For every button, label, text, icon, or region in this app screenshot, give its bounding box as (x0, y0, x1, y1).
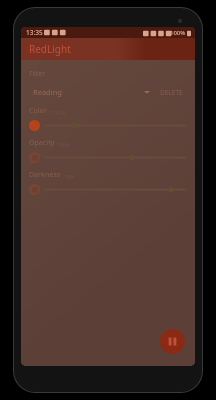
button[interactable]: Color swatch (29, 120, 40, 131)
staticText: 13:35 (26, 28, 43, 37)
staticText: DELETE (160, 88, 183, 97)
staticText: Color (29, 106, 47, 116)
button[interactable]: Color slider (45, 119, 185, 132)
button[interactable]: Reading (29, 85, 156, 99)
button[interactable]: Opacity slider (45, 151, 185, 164)
staticText: Opacity (29, 138, 55, 148)
staticText: 1100K (50, 109, 66, 116)
button[interactable]: Darkness slider (45, 183, 185, 196)
staticText: 78% (64, 173, 75, 180)
button[interactable]: DELETE (156, 85, 187, 99)
staticText: 100% (170, 29, 186, 37)
button[interactable]: Pause filter (160, 329, 185, 354)
staticText: Filter (29, 69, 45, 78)
button[interactable]: Opacity swatch (29, 152, 40, 163)
staticText: Darkness (29, 170, 61, 180)
staticText: 93% (58, 141, 69, 148)
staticText: Reading (33, 87, 62, 97)
staticText: RedLight (29, 42, 71, 56)
button[interactable]: Darkness swatch (29, 184, 40, 195)
